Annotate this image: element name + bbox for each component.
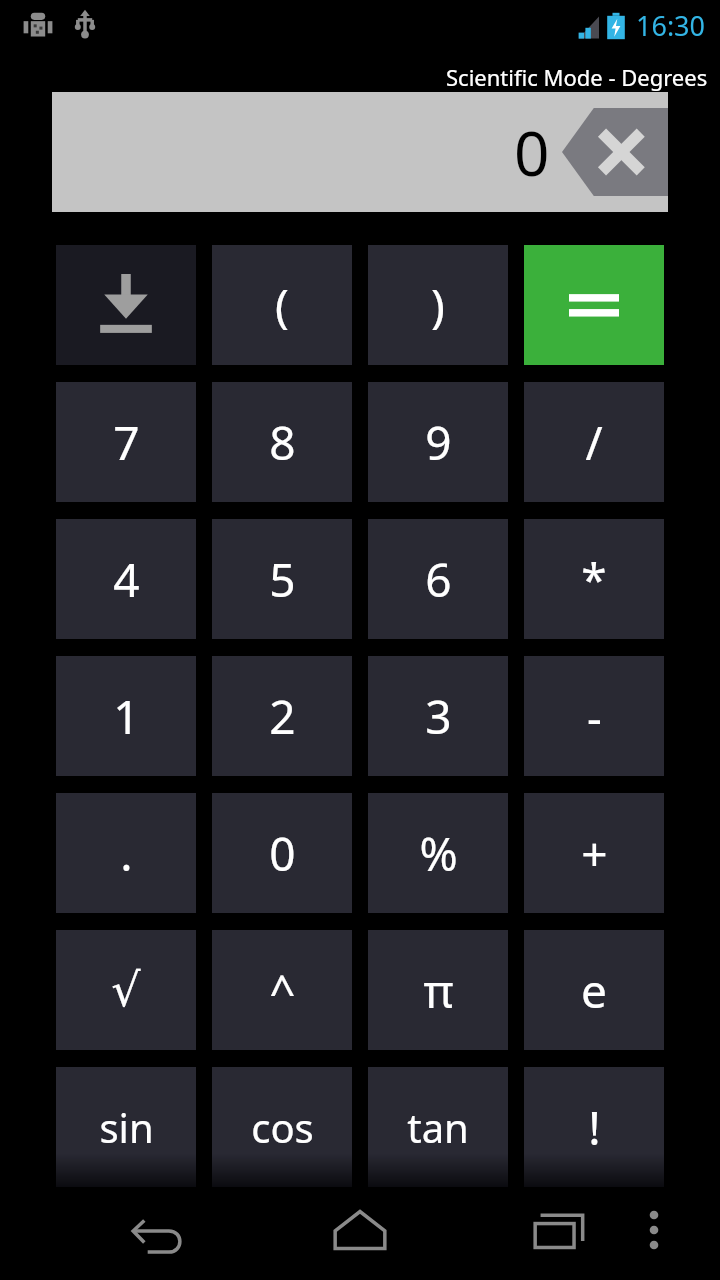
staticText: 1 [113,685,140,748]
staticText: sin [99,1100,154,1154]
button[interactable]: 4 [56,519,196,639]
button[interactable]: ( [212,245,352,365]
staticText: 0 [514,110,550,194]
button[interactable]: 3 [368,656,508,776]
staticText: ) [431,274,445,337]
staticText: ^ [269,959,296,1022]
button[interactable]: * [524,519,664,639]
staticText: ! [588,1096,601,1159]
staticText: ( [275,274,289,337]
staticText: 8 [269,411,296,474]
button[interactable]: 0 [212,793,352,913]
button[interactable]: 2 [212,656,352,776]
button[interactable]: sin [56,1067,196,1187]
button[interactable]: 9 [368,382,508,502]
staticText: 5 [269,548,296,611]
staticText: Scientific Mode - Degrees [446,62,708,92]
button[interactable]: 5 [212,519,352,639]
staticText: 2 [269,685,296,748]
button[interactable]: + [524,793,664,913]
staticText: 0 [269,822,296,885]
button[interactable]: e [524,930,664,1050]
button[interactable] [524,245,664,365]
staticText: * [581,548,607,611]
button[interactable]: 7 [56,382,196,502]
staticText: + [581,822,608,885]
button[interactable]: cos [212,1067,352,1187]
staticText: e [581,959,607,1022]
button[interactable]: % [368,793,508,913]
button[interactable]: ^ [212,930,352,1050]
staticText: - [587,685,602,748]
button[interactable]: ! [524,1067,664,1187]
staticText: % [419,822,458,885]
button[interactable]: π [368,930,508,1050]
button[interactable]: - [524,656,664,776]
staticText: 9 [425,411,452,474]
button[interactable]: Home [310,1180,410,1280]
button[interactable]: Save [56,245,196,365]
staticText: π [423,959,454,1022]
button[interactable]: More options [624,1180,684,1280]
staticText: 16:30 [636,7,706,44]
button[interactable]: 0 [52,92,668,212]
staticText: cos [251,1100,314,1154]
button[interactable]: 6 [368,519,508,639]
button[interactable]: 1 [56,656,196,776]
button[interactable]: . [56,793,196,913]
button[interactable]: / [524,382,664,502]
button[interactable]: tan [368,1067,508,1187]
staticText: 6 [425,548,452,611]
button[interactable]: Delete [562,108,668,196]
staticText: 4 [113,548,140,611]
button[interactable]: Back [110,1180,210,1280]
staticText: 3 [425,685,452,748]
button[interactable]: 8 [212,382,352,502]
staticText: 7 [113,411,140,474]
staticText: √ [111,963,141,1017]
button[interactable]: Recent apps [510,1180,610,1280]
button[interactable]: ) [368,245,508,365]
staticText: . [120,822,133,885]
button[interactable]: √ [56,930,196,1050]
staticText: / [585,411,603,474]
staticText: tan [407,1100,469,1154]
